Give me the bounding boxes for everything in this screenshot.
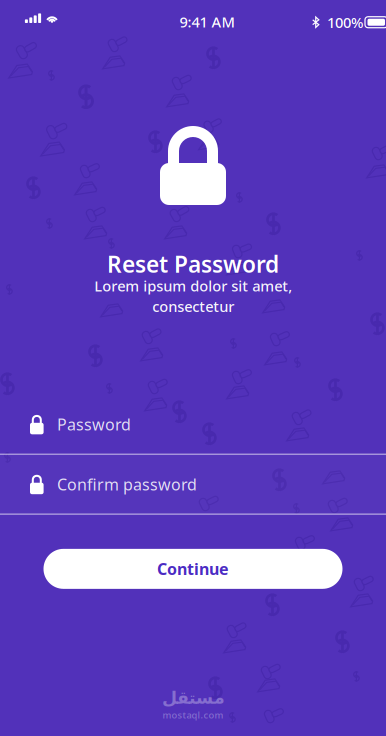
button[interactable]: Continue: [43, 549, 342, 589]
staticText: مستقل: [161, 688, 224, 708]
staticText: 100%: [327, 12, 363, 32]
staticText: Reset Password: [107, 249, 279, 279]
button[interactable]: Password: [0, 395, 386, 455]
staticText: mostaql.com: [162, 709, 223, 721]
staticText: 9:41 AM: [179, 12, 234, 31]
staticText: Continue: [157, 558, 229, 579]
button[interactable]: Confirm password: [0, 455, 386, 515]
staticText: Password: [57, 414, 131, 435]
staticText: Lorem ipsum dolor sit amet, consectetur: [94, 276, 292, 316]
staticText: Confirm password: [57, 474, 197, 495]
